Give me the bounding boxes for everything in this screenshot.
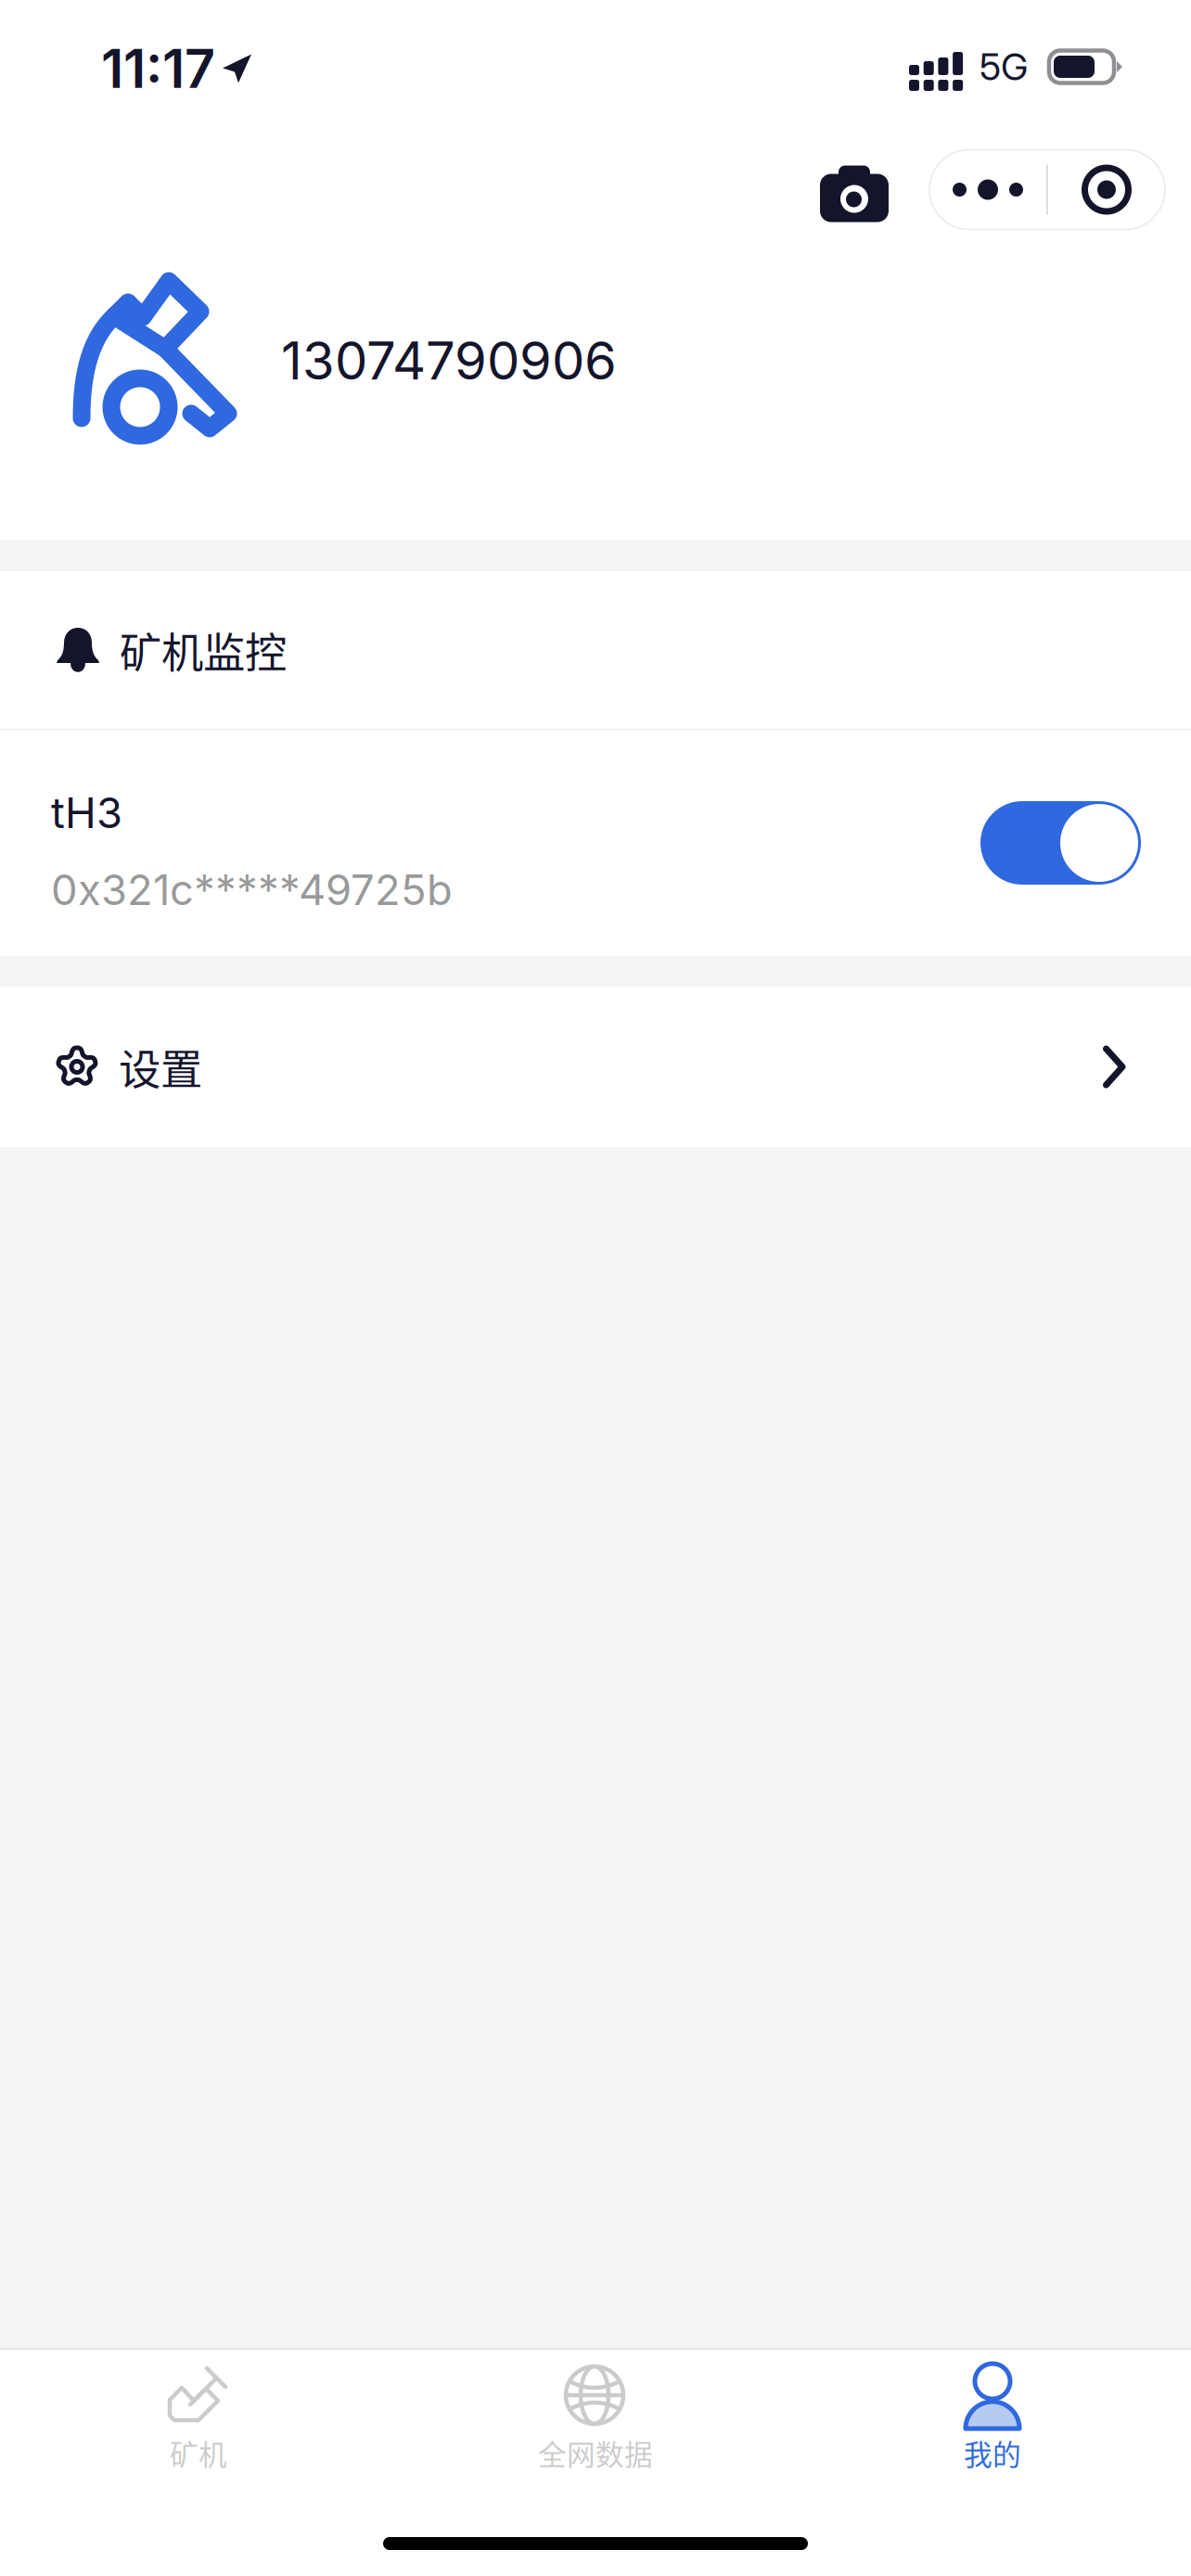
button[interactable]: Camera bbox=[820, 166, 889, 222]
button[interactable]: 全网数据 bbox=[397, 2363, 794, 2494]
staticText: 5G bbox=[980, 44, 1028, 89]
staticText: 矿机监控 bbox=[120, 620, 287, 680]
button[interactable]: 设置 bbox=[0, 987, 1191, 1147]
button[interactable]: More bbox=[929, 150, 1046, 230]
button[interactable]: Close mini program bbox=[1048, 150, 1165, 230]
button[interactable]: 我的 bbox=[794, 2363, 1191, 2494]
staticText: 13074790906 bbox=[281, 329, 617, 392]
staticText: 11:17 bbox=[101, 36, 215, 101]
staticText: 全网数据 bbox=[538, 2432, 653, 2473]
staticText: 设置 bbox=[119, 1036, 202, 1097]
button[interactable]: 矿机监控 bbox=[0, 571, 1191, 729]
staticText: tH3 bbox=[51, 787, 122, 838]
staticText: 我的 bbox=[964, 2432, 1021, 2473]
button[interactable]: tH3 bbox=[0, 730, 1191, 956]
staticText: 矿机 bbox=[170, 2432, 227, 2473]
staticText: 0x321c*****49725b bbox=[51, 864, 453, 915]
button[interactable]: 矿机 bbox=[0, 2363, 397, 2494]
